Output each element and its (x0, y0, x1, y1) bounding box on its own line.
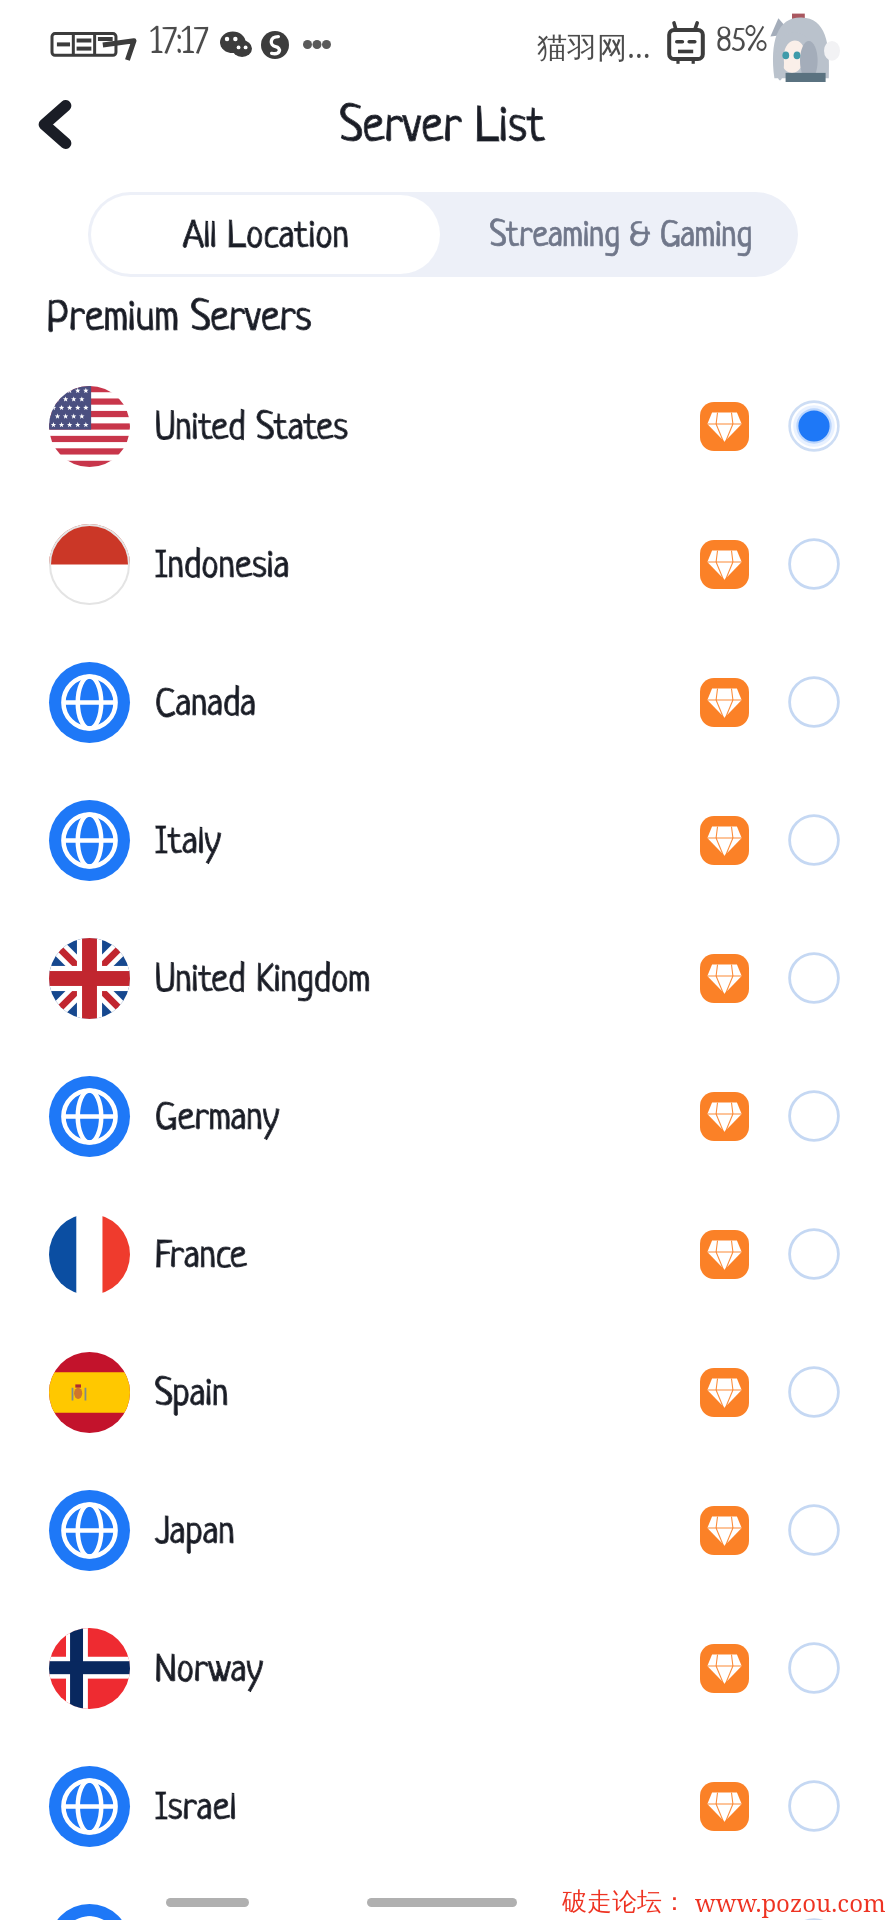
button[interactable]: Select Italy (788, 814, 840, 866)
button[interactable]: Select United States (788, 400, 840, 452)
button[interactable]: Premium (700, 1368, 749, 1417)
staticText: All Location (183, 217, 349, 258)
staticText: France (155, 1237, 247, 1278)
button[interactable]: Mexico (0, 1875, 886, 1920)
staticText: Israel (155, 1789, 237, 1830)
button[interactable]: Premium (700, 678, 749, 727)
staticText: Norway (155, 1651, 263, 1692)
staticText: Japan (155, 1513, 235, 1554)
button[interactable]: Premium (700, 1092, 749, 1141)
staticText: United States (155, 409, 349, 450)
staticText: Streaming & Gaming (490, 218, 752, 256)
staticText: United Kingdom (155, 961, 371, 1002)
staticText: France (155, 1237, 247, 1278)
button[interactable]: Premium (700, 402, 749, 451)
button[interactable]: Premium (700, 816, 749, 865)
staticText: Premium Servers (47, 297, 312, 342)
staticText: Germany (155, 1099, 280, 1140)
button[interactable]: Japan (0, 1461, 886, 1599)
button[interactable]: France (0, 1185, 886, 1323)
button[interactable]: Germany (0, 1047, 886, 1185)
button[interactable]: Select Mexico (788, 1918, 840, 1920)
button[interactable]: Select France (788, 1228, 840, 1280)
button[interactable]: Italy (0, 771, 886, 909)
button[interactable]: Premium (700, 1782, 749, 1831)
staticText: www.pozou.com (695, 1886, 886, 1919)
staticText: Server List (340, 103, 546, 156)
staticText: Italy (155, 823, 221, 864)
staticText: Indonesia (155, 547, 290, 588)
staticText: 破走论坛： (562, 1886, 687, 1917)
button[interactable]: Premium (700, 540, 749, 589)
button[interactable]: Streaming & Gaming (443, 192, 798, 277)
button[interactable]: Select Norway (788, 1642, 840, 1694)
staticText: 85% (716, 26, 767, 60)
button[interactable]: Canada (0, 633, 886, 771)
button[interactable]: Spain (0, 1323, 886, 1461)
button[interactable]: Premium (700, 1644, 749, 1693)
button[interactable]: Back (17, 86, 93, 162)
staticText: Server List (340, 103, 546, 156)
staticText: Indonesia (155, 547, 290, 588)
staticText: All Location (183, 217, 349, 258)
staticText: Norway (155, 1651, 263, 1692)
button[interactable]: Select Germany (788, 1090, 840, 1142)
button[interactable]: Select Israel (788, 1780, 840, 1832)
staticText: Spain (155, 1375, 229, 1416)
staticText: Spain (155, 1375, 229, 1416)
button[interactable]: Select Spain (788, 1366, 840, 1418)
staticText: Italy (155, 823, 221, 864)
button[interactable]: Israel (0, 1737, 886, 1875)
staticText: Japan (155, 1513, 235, 1554)
staticText: United States (155, 409, 349, 450)
button[interactable]: All Location (91, 195, 440, 274)
staticText: Germany (155, 1099, 280, 1140)
button[interactable]: United States (0, 357, 886, 495)
button[interactable]: Select Indonesia (788, 538, 840, 590)
staticText: 猫羽网… (537, 26, 651, 67)
button[interactable]: United Kingdom (0, 909, 886, 1047)
button[interactable]: Select United Kingdom (788, 952, 840, 1004)
staticText: Premium Servers (47, 297, 312, 342)
staticText: 17:17 (150, 25, 209, 63)
staticText: Israel (155, 1789, 237, 1830)
button[interactable]: Select Japan (788, 1504, 840, 1556)
staticText: Canada (155, 685, 256, 726)
button[interactable]: Premium (700, 1506, 749, 1555)
staticText: Canada (155, 685, 256, 726)
button[interactable]: Premium (700, 954, 749, 1003)
button[interactable]: Select Canada (788, 676, 840, 728)
button[interactable]: Norway (0, 1599, 886, 1737)
button[interactable]: Premium (700, 1230, 749, 1279)
staticText: Streaming & Gaming (490, 218, 752, 256)
staticText: United Kingdom (155, 961, 371, 1002)
button[interactable]: Indonesia (0, 495, 886, 633)
